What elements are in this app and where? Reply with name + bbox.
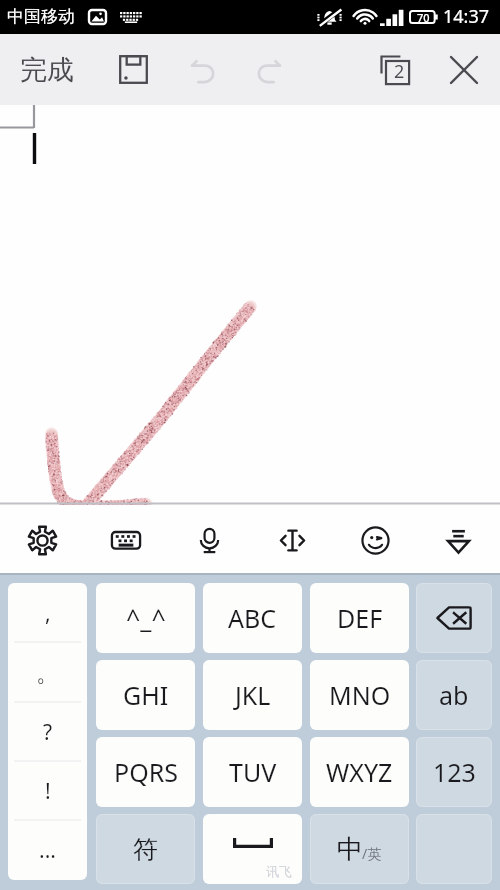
staticText: 14:37 xyxy=(443,4,490,29)
button[interactable]: Hide keyboard xyxy=(417,505,500,575)
button[interactable]: Close xyxy=(451,57,477,83)
staticText: /英 xyxy=(362,844,382,863)
staticText: 123 xyxy=(433,755,476,789)
button[interactable]: Settings xyxy=(0,505,84,575)
staticText: DEF xyxy=(337,601,383,635)
button[interactable]: ab xyxy=(416,660,492,730)
button[interactable]: 完成 xyxy=(20,53,74,87)
staticText: ABC xyxy=(228,601,277,635)
button[interactable]: 中 xyxy=(310,814,409,884)
button[interactable]: ^_^ xyxy=(96,583,195,653)
button[interactable]: 符 xyxy=(96,814,195,884)
staticText: 完成 xyxy=(20,53,74,87)
staticText: , xyxy=(45,599,51,628)
button[interactable]: ! xyxy=(8,762,87,821)
button[interactable]: JKL xyxy=(203,660,302,730)
staticText: ... xyxy=(39,836,56,865)
staticText: 讯飞 xyxy=(266,863,292,879)
staticText: JKL xyxy=(235,678,271,712)
button[interactable]: Cursor xyxy=(251,505,334,575)
staticText: 70 xyxy=(417,10,430,25)
button[interactable]: Pages xyxy=(380,55,410,85)
button[interactable]: Emoji xyxy=(334,505,417,575)
button[interactable]: ABC xyxy=(203,583,302,653)
button[interactable]: TUV xyxy=(203,737,302,807)
button[interactable]: Voice input xyxy=(168,505,251,575)
staticText: GHI xyxy=(123,678,169,712)
button[interactable]: 。 xyxy=(8,643,87,703)
button[interactable]: MNO xyxy=(310,660,409,730)
button[interactable]: 讯飞 xyxy=(203,814,302,884)
staticText: ! xyxy=(45,777,51,806)
staticText: MNO xyxy=(329,678,391,712)
staticText: WXYZ xyxy=(326,755,393,789)
staticText: TUV xyxy=(229,755,277,789)
button[interactable]: Undo xyxy=(189,57,217,84)
button[interactable] xyxy=(416,583,492,653)
button[interactable]: DEF xyxy=(310,583,409,653)
staticText: ab xyxy=(439,678,469,712)
button[interactable]: Redo xyxy=(255,57,283,84)
button[interactable]: GHI xyxy=(96,660,195,730)
staticText: 中 xyxy=(337,833,363,866)
staticText: ? xyxy=(43,718,53,747)
staticText: 。 xyxy=(36,659,59,688)
button[interactable]: ? xyxy=(8,703,87,762)
button[interactable]: , xyxy=(8,583,87,643)
button[interactable]: WXYZ xyxy=(310,737,409,807)
button[interactable]: ... xyxy=(8,821,87,880)
button[interactable]: Keyboard xyxy=(84,505,168,575)
staticText: PQRS xyxy=(114,755,178,789)
button[interactable]: 123 xyxy=(416,737,492,807)
button[interactable]: PQRS xyxy=(96,737,195,807)
staticText: ^_^ xyxy=(126,601,166,635)
staticText: 2 xyxy=(394,59,405,84)
staticText: 符 xyxy=(133,834,158,865)
staticText: 中国移动 xyxy=(7,6,75,27)
button[interactable]: Save xyxy=(119,55,148,84)
